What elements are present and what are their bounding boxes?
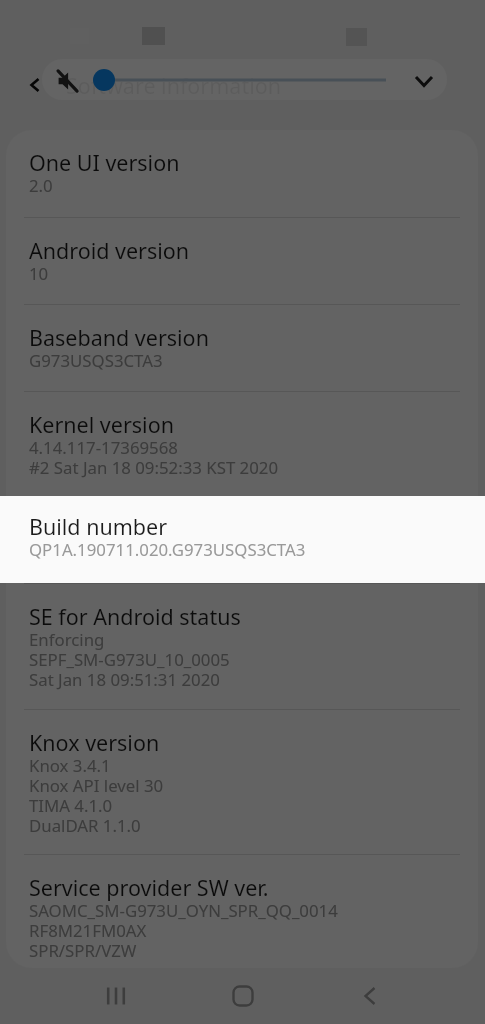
- button[interactable]: [42, 59, 447, 100]
- staticText: Build number: [29, 519, 168, 544]
- staticText: SE for Android status: [29, 605, 241, 630]
- button[interactable]: SE for Android status: [6, 584, 478, 709]
- staticText: Knox version: [29, 731, 160, 756]
- staticText: SEPF_SM-G973U_10_0005: [29, 650, 230, 670]
- button[interactable]: Knox version: [6, 710, 478, 854]
- staticText: Knox 3.4.1: [29, 756, 111, 776]
- staticText: TIMA 4.1.0: [29, 796, 113, 816]
- staticText: Kernel version: [29, 413, 174, 438]
- button[interactable]: Service provider SW ver.: [6, 855, 478, 968]
- staticText: 2.0: [29, 176, 53, 196]
- staticText: #2 Sat Jan 18 09:52:33 KST 2020: [29, 458, 279, 478]
- button[interactable]: Build number: [0, 496, 485, 583]
- button[interactable]: Baseband version: [6, 305, 478, 391]
- staticText: 10: [29, 264, 49, 284]
- staticText: Build number: [29, 515, 168, 540]
- button[interactable]: Android version: [6, 218, 478, 304]
- staticText: 4.14.117-17369568: [29, 438, 178, 458]
- staticText: QP1A.190711.020.G973USQS3CTA3: [29, 544, 306, 564]
- button[interactable]: Kernel version: [6, 392, 478, 497]
- button[interactable]: Navigate up: [17, 67, 53, 103]
- button[interactable]: Build number: [6, 498, 478, 583]
- button[interactable]: Expand volume controls: [410, 67, 438, 95]
- staticText: DualDAR 1.1.0: [29, 816, 141, 836]
- button[interactable]: Mute: [53, 67, 81, 95]
- button[interactable]: Back: [346, 972, 394, 1020]
- button[interactable]: Recents: [92, 972, 140, 1020]
- staticText: SPR/SPR/VZW: [29, 941, 137, 961]
- button[interactable]: Home: [219, 972, 267, 1020]
- staticText: G973USQS3CTA3: [29, 351, 163, 371]
- staticText: Android version: [29, 239, 190, 264]
- staticText: Service provider SW ver.: [29, 876, 269, 901]
- staticText: Software information: [66, 71, 281, 100]
- staticText: Baseband version: [29, 326, 209, 351]
- button[interactable]: One UI version: [6, 130, 478, 217]
- staticText: Sat Jan 18 09:51:31 2020: [29, 670, 220, 690]
- staticText: SAOMC_SM-G973U_OYN_SPR_QQ_0014: [29, 901, 338, 921]
- staticText: RF8M21FM0AX: [29, 921, 147, 941]
- staticText: One UI version: [29, 151, 180, 176]
- staticText: QP1A.190711.020.G973USQS3CTA3: [29, 540, 306, 560]
- button[interactable]: Volume: [93, 69, 115, 91]
- staticText: Enforcing: [29, 630, 105, 650]
- staticText: Knox API level 30: [29, 776, 164, 796]
